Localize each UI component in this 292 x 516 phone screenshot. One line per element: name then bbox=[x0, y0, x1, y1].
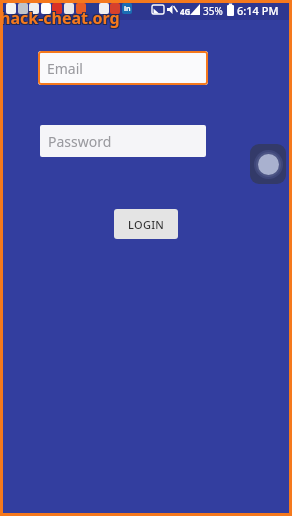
staticText: hack-cheat.org bbox=[0, 7, 120, 29]
button[interactable]: Email bbox=[38, 51, 208, 85]
staticText: Email bbox=[47, 59, 83, 78]
staticText: hack-cheat.org bbox=[0, 8, 119, 30]
staticText: hack-cheat.org bbox=[0, 6, 119, 28]
staticText: 4G bbox=[180, 6, 191, 17]
staticText: hack-cheat.org bbox=[1, 6, 121, 28]
button[interactable]: Password bbox=[40, 125, 206, 157]
button[interactable] bbox=[250, 144, 286, 184]
staticText: 6:14 PM bbox=[237, 3, 279, 18]
button[interactable]: LOGIN bbox=[114, 209, 178, 239]
staticText: in bbox=[124, 4, 131, 14]
staticText: LOGIN bbox=[128, 217, 165, 232]
staticText: 35% bbox=[203, 4, 223, 18]
staticText: Password bbox=[48, 132, 112, 151]
staticText: hack-cheat.org bbox=[1, 8, 121, 30]
